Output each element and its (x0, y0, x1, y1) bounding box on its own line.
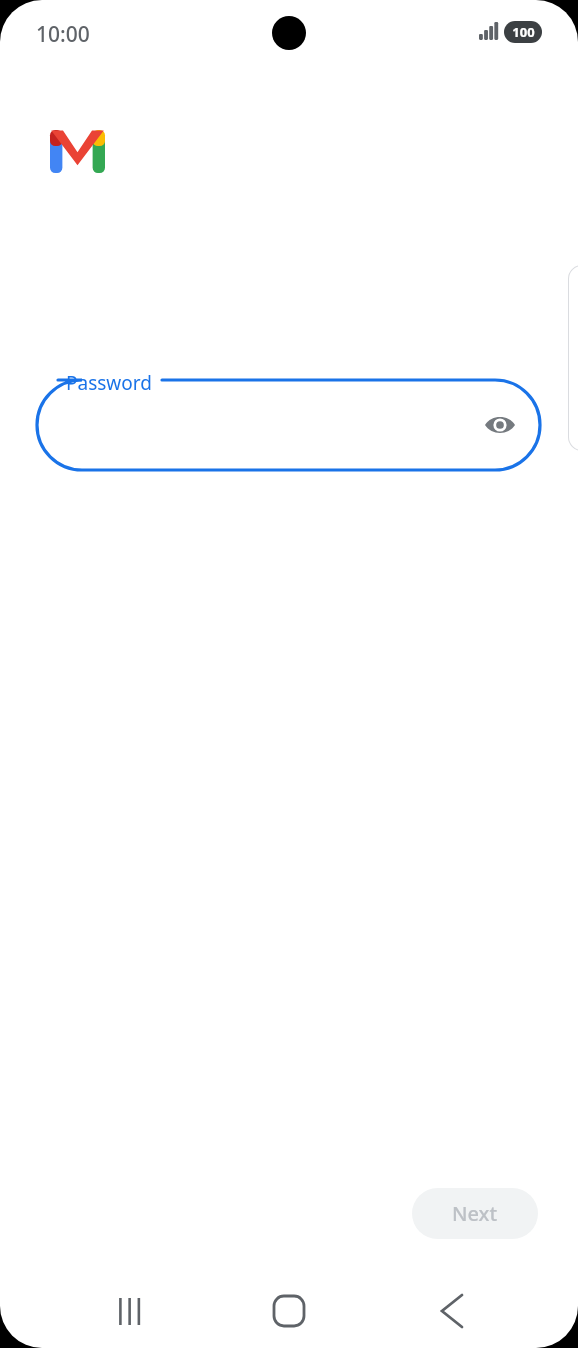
button[interactable]: Back (416, 1275, 488, 1347)
button[interactable]: Home (253, 1275, 325, 1347)
staticText: Password (66, 370, 152, 396)
button[interactable]: Recents (94, 1275, 166, 1347)
staticText: Next (452, 1200, 498, 1227)
button[interactable]: Next (412, 1188, 538, 1239)
staticText: 10:00 (36, 20, 90, 49)
staticText: 100 (512, 23, 535, 41)
button[interactable]: Show password (476, 401, 524, 449)
